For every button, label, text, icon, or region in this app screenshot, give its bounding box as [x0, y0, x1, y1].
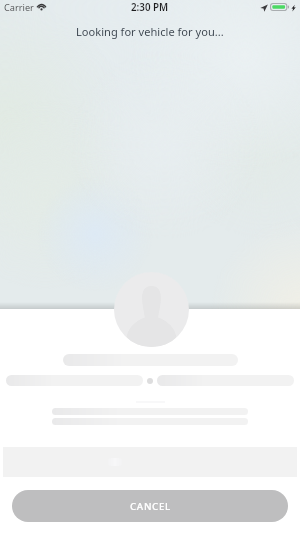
staticText: CANCEL: [130, 500, 171, 513]
staticText: Carrier: [4, 1, 34, 14]
button[interactable]: CANCEL: [12, 490, 288, 522]
staticText: 2:30 PM: [131, 1, 169, 14]
staticText: Looking for vehicle for you...: [76, 24, 224, 39]
